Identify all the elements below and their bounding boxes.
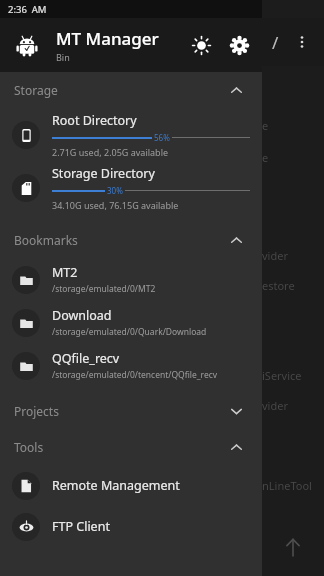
staticText: 2.71G used, 2.05G available [52, 146, 169, 158]
staticText: nLineTool [262, 478, 312, 493]
staticText: /storage/emulated/0/tencent/QQfile_recv [52, 369, 218, 381]
staticText: Bookmarks [14, 232, 78, 248]
staticText: Projects [14, 403, 59, 419]
staticText: e [262, 150, 269, 165]
button[interactable]: FTP Client [0, 506, 262, 547]
button[interactable]: MT2 [0, 258, 262, 301]
staticText: /storage/emulated/0/Quark/Download [52, 326, 207, 338]
staticText: Bin [56, 51, 70, 63]
staticText: / [272, 31, 279, 54]
button[interactable]: Tools [0, 429, 262, 465]
staticText: QQfile_recv [52, 350, 120, 367]
button[interactable]: Remote Management [0, 465, 262, 506]
staticText: vider [262, 248, 288, 263]
button[interactable]: Brightness [182, 26, 220, 64]
button[interactable]: Scroll to top [276, 530, 310, 564]
button[interactable]: App icon [12, 30, 42, 60]
button[interactable]: Root Directory [0, 108, 262, 161]
button[interactable]: Bookmarks [0, 222, 262, 258]
staticText: MT2 [52, 264, 78, 281]
staticText: 56% [154, 132, 170, 143]
button[interactable]: Download [0, 301, 262, 344]
button[interactable]: More options [284, 24, 320, 60]
staticText: FTP Client [52, 518, 110, 535]
button[interactable]: Storage [0, 72, 262, 108]
staticText: 30% [107, 185, 123, 196]
staticText: iService [262, 368, 302, 383]
staticText: Storage Directory [52, 165, 155, 182]
button[interactable]: Projects [0, 393, 262, 429]
staticText: Storage [14, 82, 58, 98]
staticText: Remote Management [52, 477, 180, 494]
staticText: vider [262, 398, 288, 413]
button[interactable]: Settings [220, 26, 258, 64]
button[interactable]: Storage Directory [0, 161, 262, 214]
staticText: Download [52, 307, 112, 324]
staticText: estore [262, 278, 295, 293]
staticText: 34.10G used, 76.15G available [52, 199, 179, 211]
staticText: /storage/emulated/0/MT2 [52, 283, 156, 295]
staticText: 2:36 AM [8, 3, 47, 16]
staticText: Root Directory [52, 112, 137, 129]
staticText: MT Manager [56, 27, 159, 50]
staticText: Tools [14, 439, 44, 455]
button[interactable]: QQfile_recv [0, 344, 262, 387]
staticText: e [262, 118, 269, 133]
